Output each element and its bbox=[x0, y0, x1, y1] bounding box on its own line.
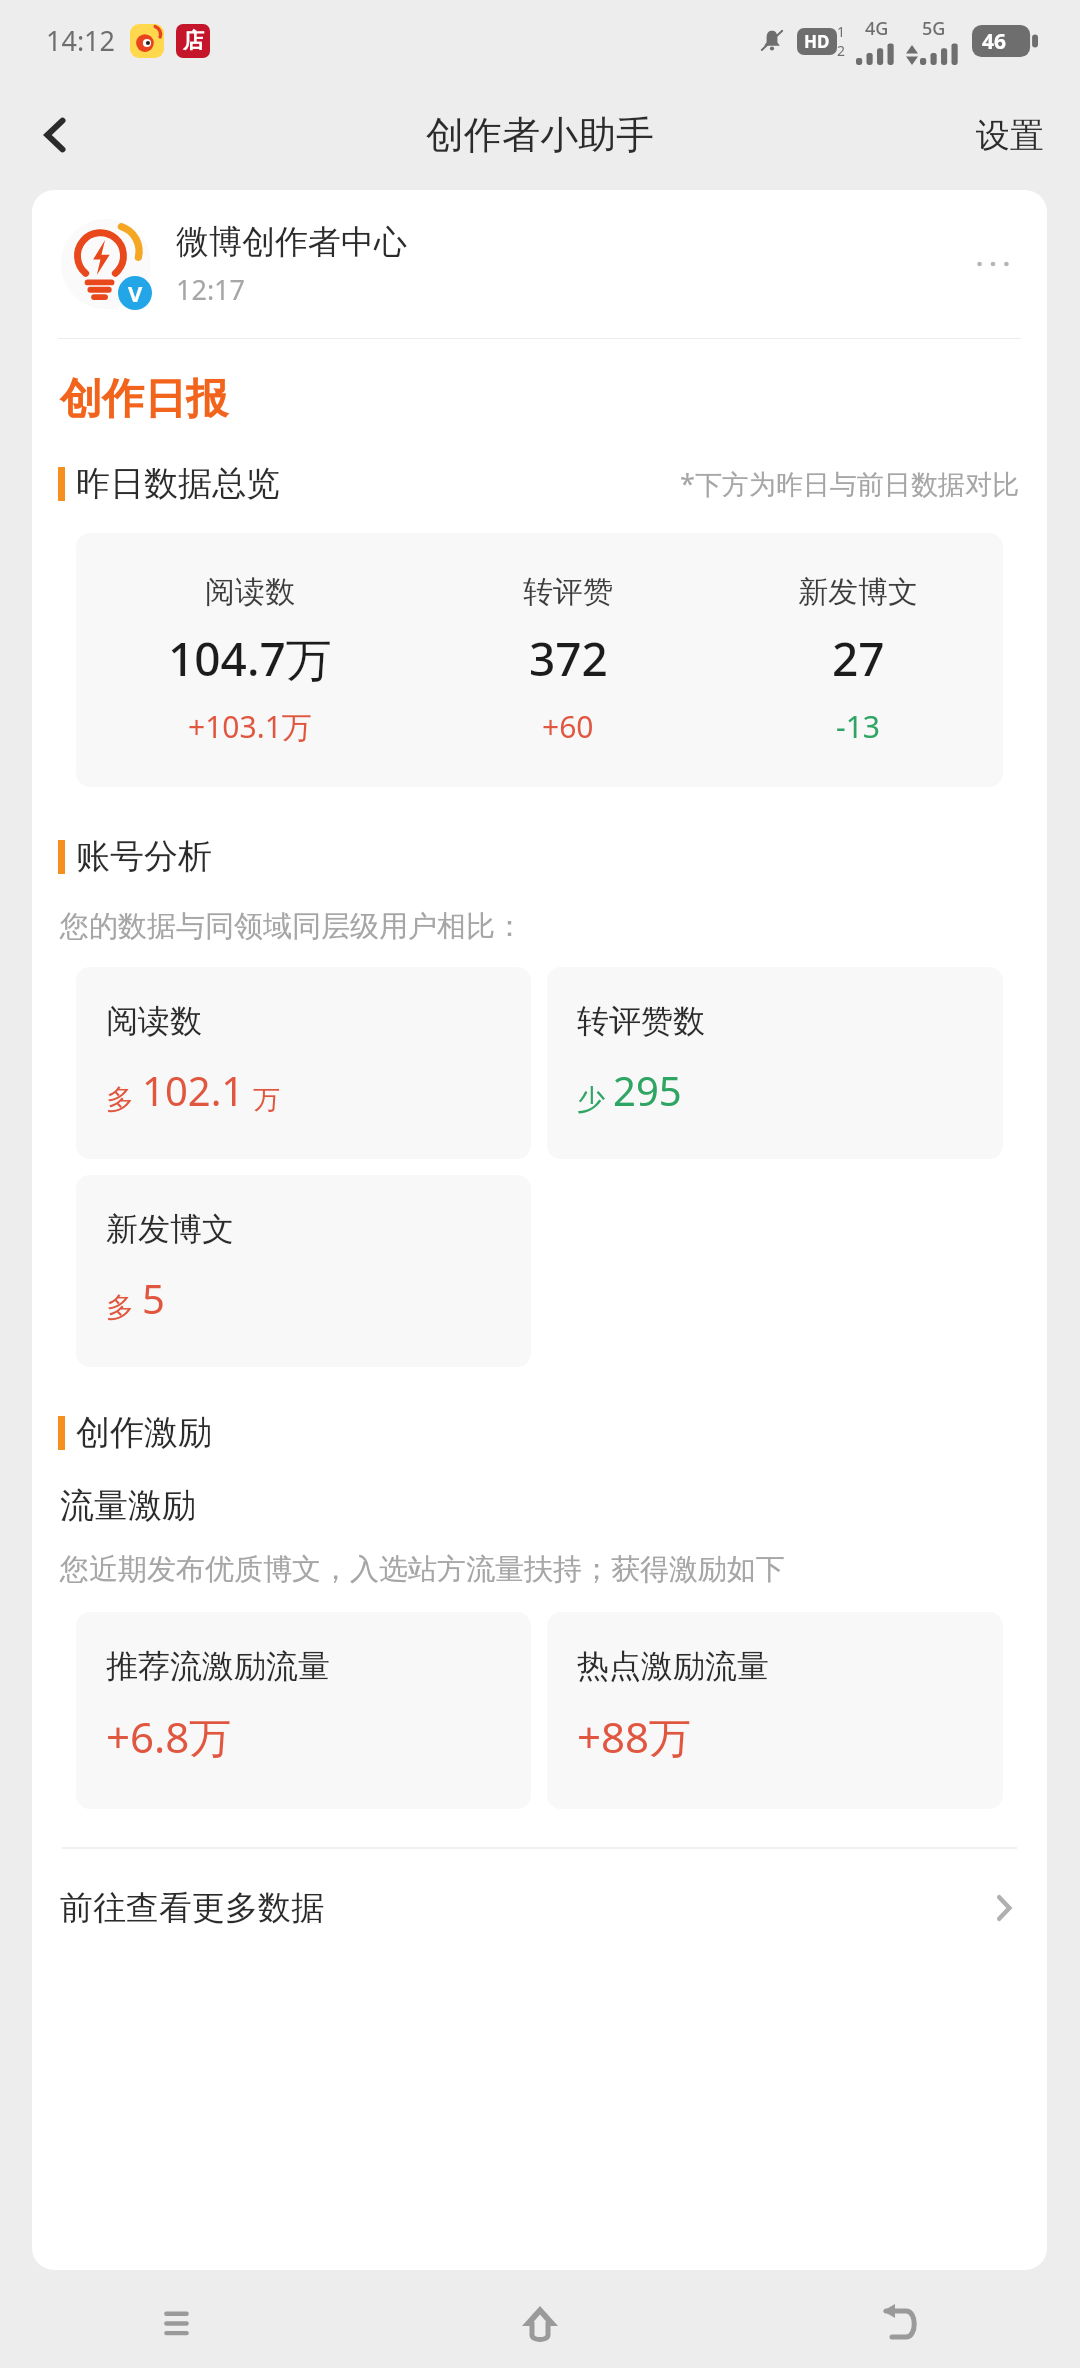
staticText: 多 bbox=[106, 1082, 134, 1117]
staticText: +88万 bbox=[577, 1708, 692, 1765]
button[interactable]: Recent apps bbox=[0, 2278, 360, 2368]
staticText: 店 bbox=[183, 28, 204, 54]
staticText: 12:17 bbox=[176, 271, 246, 308]
staticText: 微博创作者中心 bbox=[176, 221, 407, 263]
button[interactable]: More options bbox=[963, 234, 1023, 294]
staticText: 2 bbox=[837, 41, 846, 60]
staticText: 多 bbox=[106, 1290, 134, 1325]
staticText: 1 bbox=[837, 22, 846, 41]
staticText: 转评赞数 bbox=[577, 1001, 705, 1041]
button[interactable]: 新发博文 bbox=[76, 1175, 531, 1367]
staticText: 295 bbox=[613, 1063, 682, 1117]
staticText: 创作日报 bbox=[60, 373, 228, 426]
button[interactable]: Back bbox=[20, 99, 92, 171]
staticText: 转评赞 bbox=[523, 573, 613, 611]
staticText: 104.7万 bbox=[168, 627, 332, 690]
staticText: 创作激励 bbox=[76, 1411, 212, 1454]
staticText: 流量激励 bbox=[60, 1484, 196, 1527]
button[interactable]: Back bbox=[720, 2278, 1080, 2368]
staticText: 4G bbox=[865, 16, 889, 41]
staticText: 阅读数 bbox=[205, 573, 295, 611]
button[interactable]: 设置 bbox=[962, 104, 1058, 167]
staticText: 万 bbox=[253, 1083, 280, 1117]
staticText: V bbox=[128, 278, 143, 308]
staticText: 热点激励流量 bbox=[577, 1646, 769, 1686]
button[interactable]: Home bbox=[360, 2278, 720, 2368]
button[interactable]: 热点激励流量 bbox=[547, 1612, 1003, 1809]
staticText: *下方为昨日与前日数据对比 bbox=[680, 465, 1019, 502]
staticText: -13 bbox=[836, 706, 880, 747]
staticText: 新发博文 bbox=[106, 1209, 234, 1249]
staticText: 昨日数据总览 bbox=[76, 462, 280, 505]
staticText: 设置 bbox=[976, 114, 1044, 157]
staticText: 46 bbox=[982, 27, 1007, 56]
staticText: 阅读数 bbox=[106, 1001, 202, 1041]
button[interactable]: 阅读数 bbox=[76, 967, 531, 1159]
staticText: 5G bbox=[922, 16, 946, 41]
staticText: 少 bbox=[577, 1082, 605, 1117]
button[interactable]: 转评赞数 bbox=[547, 967, 1003, 1159]
staticText: 372 bbox=[529, 627, 608, 690]
staticText: +6.8万 bbox=[106, 1708, 232, 1765]
staticText: HD bbox=[804, 30, 830, 53]
staticText: 推荐流激励流量 bbox=[106, 1646, 330, 1686]
staticText: 14:12 bbox=[46, 22, 116, 59]
button[interactable]: 推荐流激励流量 bbox=[76, 1612, 531, 1809]
staticText: 新发博文 bbox=[798, 573, 918, 611]
staticText: 您的数据与同领域同层级用户相比： bbox=[60, 908, 524, 945]
button[interactable]: 前往查看更多数据 bbox=[32, 1849, 1047, 1967]
staticText: +60 bbox=[542, 706, 594, 747]
staticText: 前往查看更多数据 bbox=[60, 1887, 324, 1929]
staticText: +103.1万 bbox=[188, 706, 312, 747]
button[interactable]: 阅读数 bbox=[76, 533, 1003, 787]
staticText: 102.1 bbox=[142, 1063, 245, 1117]
staticText: 您近期发布优质博文，入选站方流量扶持；获得激励如下 bbox=[60, 1551, 785, 1588]
staticText: 创作者小助手 bbox=[426, 111, 654, 159]
staticText: 账号分析 bbox=[76, 835, 212, 878]
staticText: 5 bbox=[142, 1271, 165, 1325]
staticText: 27 bbox=[832, 627, 885, 690]
button[interactable]: V bbox=[32, 212, 1047, 316]
